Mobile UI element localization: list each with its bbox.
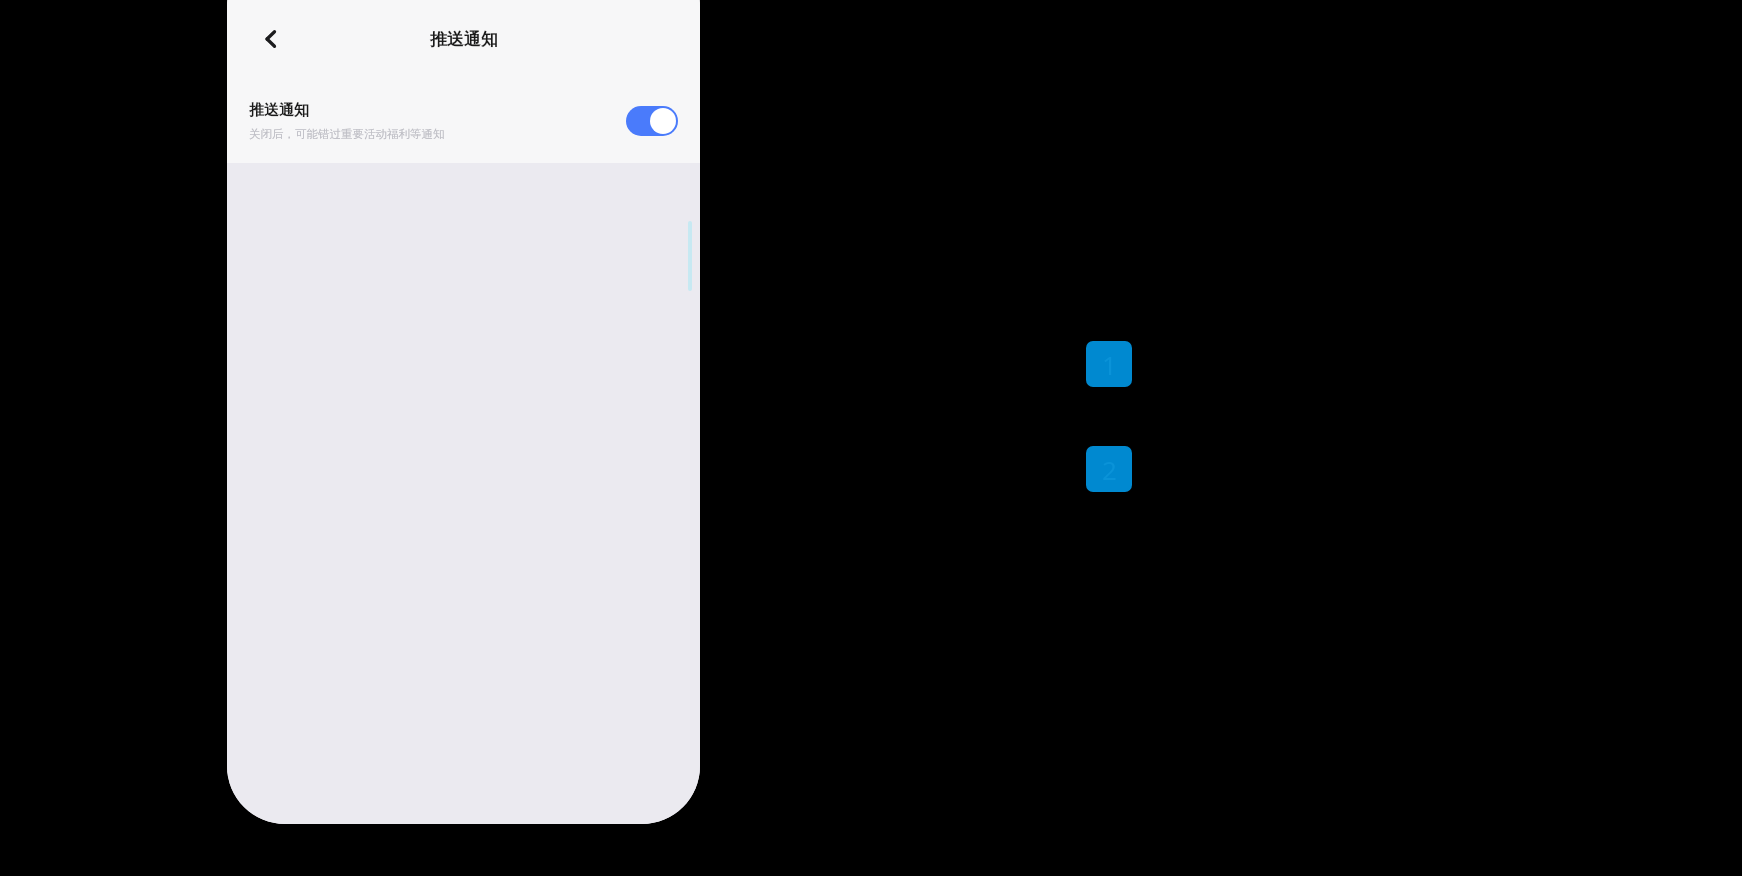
- button[interactable]: 推送通知: [227, 78, 700, 163]
- button[interactable]: Back: [249, 17, 293, 61]
- button[interactable]: Push notification toggle: [626, 106, 678, 136]
- staticText: 推送通知: [249, 101, 309, 120]
- staticText: 2: [1102, 452, 1117, 487]
- staticText: 推送通知: [430, 29, 498, 50]
- staticText: 关闭后，可能错过重要活动福利等通知: [249, 127, 445, 141]
- button[interactable]: Marker 1: [1086, 341, 1132, 387]
- button[interactable]: Marker 2: [1086, 446, 1132, 492]
